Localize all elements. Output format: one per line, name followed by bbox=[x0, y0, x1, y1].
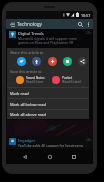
staticText: Technology bbox=[17, 21, 43, 27]
staticText: Share this article to bbox=[10, 50, 44, 55]
staticText: Pocket bbox=[62, 76, 73, 80]
staticText: Mark all above read bbox=[10, 112, 46, 117]
button[interactable]: Mark read bbox=[7, 88, 89, 98]
button[interactable]: Open navigation menu bbox=[7, 19, 17, 29]
button[interactable]: Pocket bbox=[51, 75, 87, 85]
button[interactable]: Digital Trends bbox=[6, 29, 93, 47]
staticText: 10:57 bbox=[81, 13, 91, 18]
staticText: Read It Later bbox=[26, 80, 44, 84]
staticText: YouTube adds 4K support for livestreams bbox=[18, 143, 84, 147]
button[interactable]: Share on WhatsApp bbox=[63, 57, 72, 66]
staticText: 24h bbox=[86, 31, 92, 35]
staticText: Engadget bbox=[18, 138, 35, 143]
button[interactable]: Share on Twitter bbox=[17, 57, 26, 66]
button[interactable]: More sharing options bbox=[78, 57, 87, 66]
staticText: Microsoft signals it will support more g… bbox=[18, 36, 86, 45]
button[interactable]: Saved Notes bbox=[15, 75, 51, 85]
button[interactable]: More options bbox=[85, 21, 92, 28]
button[interactable]: Mark all above read bbox=[7, 110, 89, 119]
staticText: Microsoft signals it will support more g… bbox=[18, 36, 86, 45]
button[interactable]: Home bbox=[44, 151, 56, 163]
button[interactable]: Search bbox=[76, 20, 85, 29]
button[interactable]: Recent apps bbox=[68, 151, 80, 163]
staticText: Mark all below read bbox=[10, 102, 46, 107]
staticText: (Read It Later) bbox=[62, 80, 82, 84]
staticText: Mark read bbox=[10, 91, 29, 96]
staticText: Saved Notes bbox=[26, 76, 45, 80]
staticText: Digital Trends bbox=[18, 31, 43, 36]
staticText: Save this article to bbox=[10, 69, 42, 74]
button[interactable]: Engadget bbox=[6, 136, 93, 149]
staticText: 24h bbox=[86, 31, 92, 35]
button[interactable]: Mark all below read bbox=[7, 99, 89, 109]
button[interactable]: Back bbox=[19, 151, 31, 163]
staticText: 24h bbox=[86, 138, 92, 142]
staticText: Digital Trends bbox=[18, 31, 44, 36]
button[interactable]: Share on Facebook bbox=[32, 57, 41, 66]
button[interactable]: Share on Google Plus bbox=[48, 57, 57, 66]
